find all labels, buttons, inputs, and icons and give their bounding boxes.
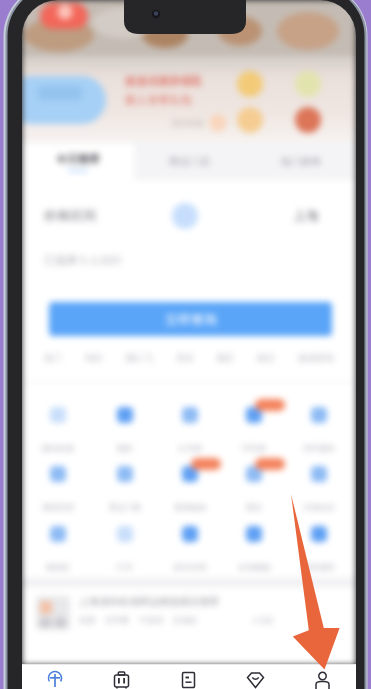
staticText: 汽车票: [242, 443, 266, 453]
button[interactable]: Luggage: [88, 664, 155, 689]
staticText: 含早餐: [105, 615, 129, 625]
button[interactable]: 更多服务: [293, 522, 345, 572]
staticText: 随心飞: [126, 352, 153, 363]
button[interactable]: 汽车票: [228, 403, 280, 453]
staticText: 价格区间: [44, 207, 96, 223]
button[interactable]: 火车票: [164, 403, 216, 453]
staticText: 用车服务: [303, 443, 335, 453]
staticText: 签证: [257, 352, 275, 363]
staticText: 当地玩乐: [303, 502, 335, 512]
staticText: 可取消: [139, 615, 163, 625]
button[interactable]: 用车服务: [293, 403, 345, 453]
staticText: 签证: [246, 502, 262, 512]
button[interactable]: Profile: [289, 664, 356, 689]
button[interactable]: 上海浦东机场周边精选酒店推荐: [22, 587, 356, 649]
button[interactable]: 附近门店: [134, 143, 245, 180]
staticText: 已选择 3 人出行: [44, 252, 123, 267]
staticText: 全球购物: [238, 562, 270, 572]
staticText: 国内机票: [42, 443, 74, 453]
staticText: 酒店民宿: [42, 502, 74, 512]
staticText: 免费: [79, 615, 95, 625]
button[interactable]: 全球购物: [228, 522, 280, 572]
button[interactable]: Home: [22, 664, 88, 689]
staticText: 周末: [176, 352, 194, 363]
staticText: 超值优惠券领取: [125, 74, 202, 88]
staticText: 上海: [293, 207, 319, 223]
staticText: 度假旅游: [174, 502, 206, 512]
button[interactable]: 度假旅游: [164, 462, 216, 512]
staticText: 酒店: [216, 352, 234, 363]
staticText: 今日推荐: [56, 152, 100, 166]
staticText: 新人专享礼包: [125, 93, 191, 107]
staticText: 附近门店: [170, 155, 210, 168]
staticText: 旅游度假: [298, 352, 334, 363]
button[interactable]: Member: [222, 664, 289, 689]
button[interactable]: 热门榜单: [245, 143, 356, 180]
staticText: 接送机: [46, 562, 70, 572]
button[interactable]: Orders: [155, 664, 222, 689]
staticText: ￥358: [251, 615, 273, 626]
staticText: 立即查询: [165, 311, 217, 327]
button[interactable]: 接送机: [32, 522, 84, 572]
staticText: 热门榜单: [281, 155, 321, 168]
staticText: 上海浦东机场周边精选酒店推荐: [79, 595, 219, 608]
button[interactable]: 酒店民宿: [32, 462, 84, 512]
button[interactable]: 当地玩乐: [293, 462, 345, 512]
button[interactable]: 签证: [228, 462, 280, 512]
button[interactable]: 打车: [99, 522, 151, 572]
button[interactable]: 立即查询: [49, 302, 332, 336]
staticText: 近地铁: [173, 615, 197, 625]
staticText: 火车票: [178, 443, 202, 453]
button[interactable]: 今日推荐: [22, 143, 134, 180]
button[interactable]: 国际: [99, 403, 151, 453]
staticText: 国际: [117, 443, 133, 453]
button[interactable]: 国内机票: [32, 403, 84, 453]
button[interactable]: 景点门票: [99, 462, 151, 512]
staticText: 特价: [85, 352, 103, 363]
staticText: 景点门票: [109, 502, 141, 512]
staticText: 更多服务: [303, 562, 335, 572]
button[interactable]: 租车自驾: [164, 522, 216, 572]
staticText: 热门: [44, 352, 62, 363]
